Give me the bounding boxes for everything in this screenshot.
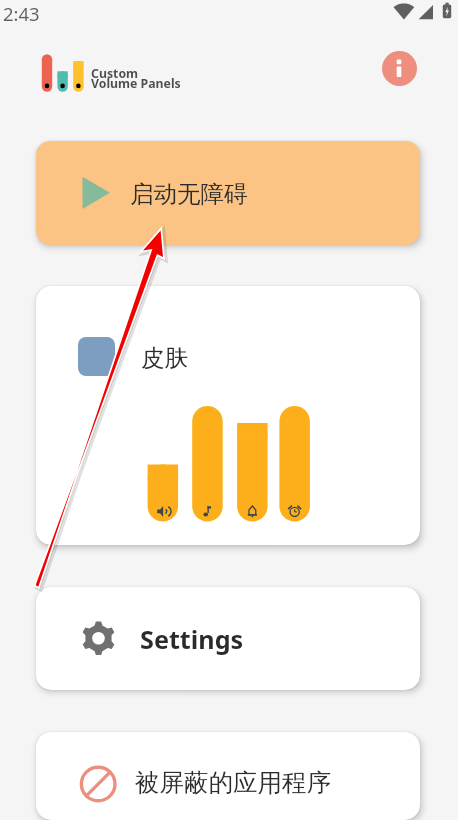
staticText: 启动无障碍 (130, 179, 248, 209)
staticText: 2:43 (3, 1, 40, 26)
button[interactable]: 启动无障碍 (36, 141, 420, 245)
button[interactable]: Settings (36, 587, 420, 690)
button[interactable]: 皮肤 (36, 286, 420, 545)
staticText: Settings (140, 622, 244, 656)
button[interactable]: 被屏蔽的应用程序 (36, 732, 420, 820)
button[interactable]: Info (382, 51, 417, 86)
staticText: 被屏蔽的应用程序 (135, 767, 331, 798)
staticText: Custom Volume Panels (91, 65, 181, 92)
staticText: 皮肤 (141, 343, 188, 373)
